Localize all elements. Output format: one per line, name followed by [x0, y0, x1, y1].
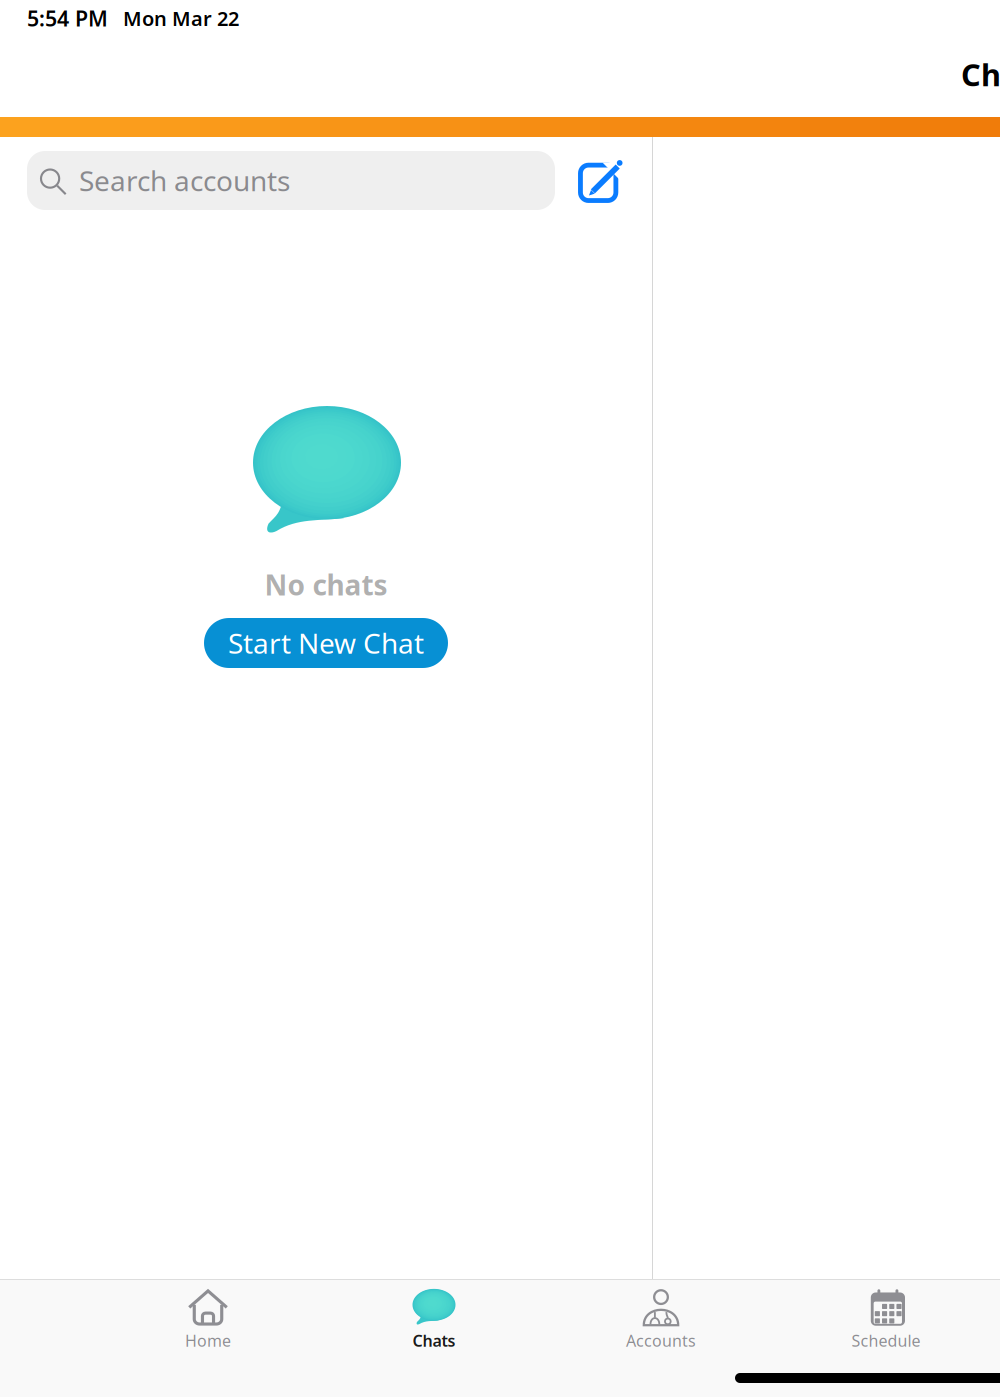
- staticText: Home: [185, 1330, 231, 1351]
- staticText: 5:54 PM: [27, 4, 108, 32]
- staticText: Mon Mar 22: [123, 5, 239, 32]
- staticText: Search accounts: [79, 162, 290, 199]
- button[interactable]: New Message: [567, 151, 633, 211]
- button[interactable]: Home: [128, 1282, 288, 1352]
- button[interactable]: Chats: [354, 1282, 514, 1352]
- staticText: No chats: [264, 566, 387, 603]
- staticText: Accounts: [626, 1330, 696, 1351]
- button[interactable]: Search accounts: [27, 151, 555, 210]
- button[interactable]: Accounts: [581, 1282, 741, 1352]
- staticText: Chats: [412, 1330, 455, 1351]
- staticText: Schedule: [851, 1330, 920, 1351]
- staticText: Chats: [961, 54, 1000, 95]
- button[interactable]: Schedule: [806, 1282, 966, 1352]
- button[interactable]: Start New Chat: [204, 618, 448, 668]
- staticText: Start New Chat: [228, 624, 424, 662]
